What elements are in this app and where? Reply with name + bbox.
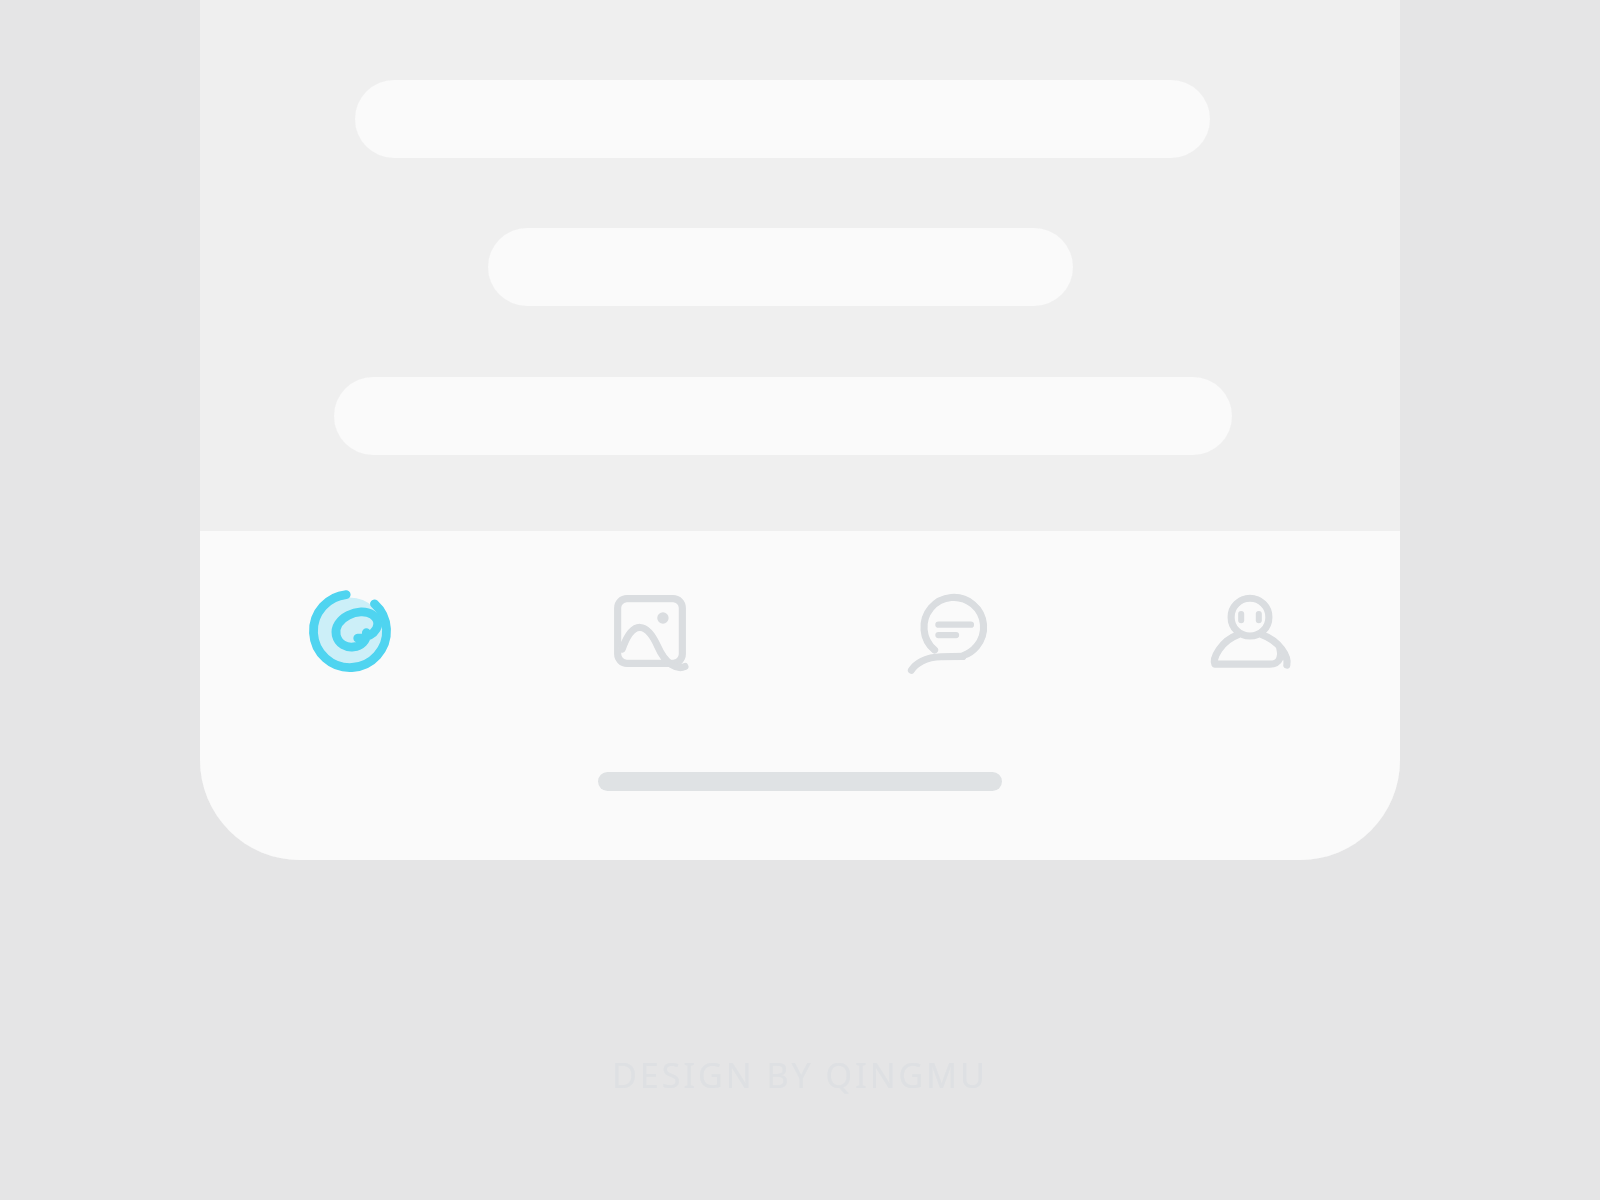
button[interactable]: Gallery: [500, 531, 800, 731]
button[interactable]: Profile: [1100, 531, 1400, 731]
button[interactable]: Home: [200, 531, 500, 731]
button[interactable]: Messages: [800, 531, 1100, 731]
